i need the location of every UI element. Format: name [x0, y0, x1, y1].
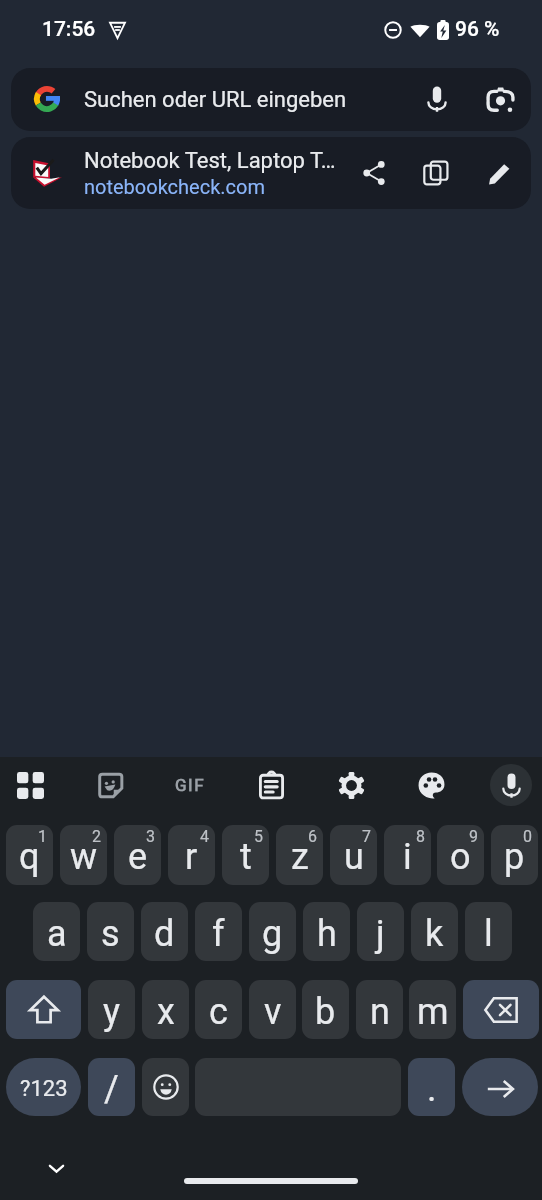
button[interactable]: Suchen oder URL eingeben — [11, 68, 531, 131]
button[interactable]: p — [491, 825, 538, 885]
staticText: d — [154, 913, 175, 955]
button[interactable]: g — [249, 902, 296, 961]
button[interactable]: b — [302, 980, 349, 1039]
staticText: c — [209, 991, 228, 1033]
staticText: n — [370, 991, 390, 1033]
button[interactable]: f — [195, 902, 242, 961]
button[interactable]: u — [330, 825, 377, 885]
button[interactable]: j — [357, 902, 404, 961]
staticText: m — [417, 991, 449, 1033]
button[interactable]: Shift — [6, 980, 81, 1039]
button[interactable]: Voice search — [413, 75, 461, 123]
button[interactable]: Theme — [407, 761, 455, 809]
button[interactable]: e — [114, 825, 161, 885]
button[interactable]: h — [303, 902, 350, 961]
button[interactable]: Settings — [327, 761, 375, 809]
staticText: 17:56 — [42, 17, 96, 42]
staticText: y — [103, 991, 121, 1033]
button[interactable]: Emoji — [142, 1058, 189, 1116]
button[interactable]: s — [87, 902, 134, 961]
button[interactable]: Stickers — [86, 761, 134, 809]
staticText: k — [425, 913, 444, 955]
staticText: 8 — [416, 827, 425, 846]
button[interactable]: o — [437, 825, 484, 885]
staticText: a — [47, 913, 67, 955]
staticText: l — [484, 913, 493, 955]
staticText: notebookcheck.com — [84, 175, 265, 198]
staticText: f — [212, 913, 225, 955]
button[interactable]: Share — [351, 150, 397, 196]
staticText: p — [504, 836, 525, 878]
staticText: s — [101, 913, 120, 955]
staticText: / — [104, 1068, 119, 1110]
button[interactable]: Voice input — [490, 764, 532, 806]
staticText: g — [262, 913, 283, 955]
button[interactable]: l — [465, 902, 512, 961]
button[interactable]: / — [88, 1058, 135, 1116]
button[interactable]: Google Lens — [476, 75, 524, 123]
staticText: GIF — [175, 775, 206, 795]
button[interactable]: m — [409, 980, 456, 1039]
staticText: o — [450, 836, 471, 878]
staticText: 7 — [362, 827, 371, 846]
button[interactable]: q — [6, 825, 53, 885]
button[interactable]: k — [411, 902, 458, 961]
staticText: e — [128, 836, 148, 878]
button[interactable]: v — [249, 980, 296, 1039]
staticText: q — [19, 836, 40, 878]
staticText: j — [376, 913, 385, 955]
staticText: x — [157, 991, 175, 1033]
staticText: u — [344, 836, 364, 878]
button[interactable]: r — [168, 825, 215, 885]
button[interactable]: x — [142, 980, 189, 1039]
staticText: r — [185, 836, 198, 878]
staticText: Notebook Test, Laptop T… — [84, 148, 336, 174]
staticText: 4 — [200, 827, 209, 846]
staticText: 3 — [146, 827, 155, 846]
staticText: 1 — [38, 827, 47, 846]
staticText: 0 — [523, 827, 532, 846]
staticText: z — [291, 836, 309, 878]
button[interactable]: d — [141, 902, 188, 961]
staticText: 96 % — [455, 17, 500, 42]
staticText: v — [264, 991, 282, 1033]
staticText: Suchen oder URL eingeben — [84, 87, 347, 113]
staticText: 5 — [254, 827, 263, 846]
staticText: . — [427, 1068, 437, 1110]
staticText: ?123 — [20, 1076, 68, 1102]
staticText: w — [70, 836, 98, 878]
button[interactable]: z — [276, 825, 323, 885]
button[interactable]: Copy — [413, 150, 459, 196]
button[interactable]: Edit — [477, 150, 523, 196]
button[interactable]: GIF — [166, 761, 214, 809]
button[interactable]: a — [33, 902, 80, 961]
button[interactable]: Hide keyboard — [32, 1144, 80, 1192]
button[interactable]: n — [356, 980, 403, 1039]
staticText: 2 — [92, 827, 101, 846]
button[interactable]: Apps — [6, 761, 54, 809]
button[interactable]: c — [195, 980, 242, 1039]
staticText: t — [240, 836, 252, 878]
staticText: b — [315, 991, 336, 1033]
button[interactable]: y — [88, 980, 135, 1039]
staticText: 9 — [469, 827, 478, 846]
button[interactable]: i — [384, 825, 431, 885]
button[interactable]: Clipboard — [247, 761, 295, 809]
button[interactable]: Backspace — [463, 980, 539, 1039]
staticText: i — [403, 836, 412, 878]
staticText: h — [317, 913, 337, 955]
button[interactable]: Enter — [462, 1058, 538, 1116]
button[interactable]: Notebook Test, Laptop T… — [11, 137, 531, 209]
button[interactable]: ?123 — [6, 1058, 81, 1116]
button[interactable]: w — [60, 825, 107, 885]
button[interactable]: . — [408, 1058, 455, 1116]
staticText: 6 — [308, 827, 317, 846]
button[interactable]: t — [222, 825, 269, 885]
